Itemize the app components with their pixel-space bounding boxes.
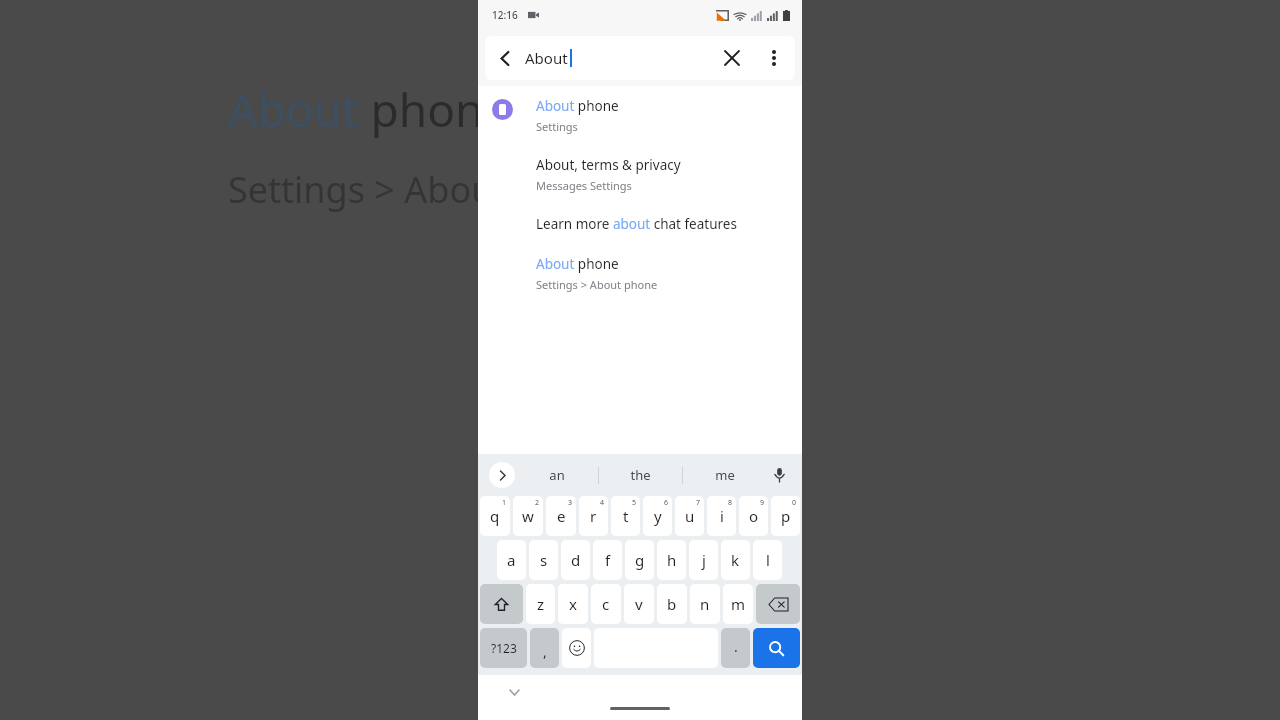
staticText: z (537, 594, 545, 614)
button[interactable]: w (513, 496, 543, 536)
button[interactable]: r (579, 496, 608, 536)
button[interactable]: n (690, 584, 720, 624)
button[interactable]: More options (753, 37, 795, 79)
button[interactable]: c (591, 584, 621, 624)
button[interactable]: m (723, 584, 753, 624)
staticText: Settings > About phone (228, 165, 625, 214)
button[interactable]: Voice input (766, 462, 792, 488)
button[interactable]: Back (485, 38, 525, 78)
button[interactable]: About (525, 48, 711, 68)
staticText: j (702, 550, 706, 570)
button[interactable]: d (561, 540, 590, 580)
staticText: About phone (536, 255, 619, 273)
button[interactable]: me (683, 454, 766, 496)
staticText: g (635, 550, 645, 570)
staticText: n (700, 594, 710, 614)
button[interactable]: About phone (478, 86, 802, 134)
staticText: 7 (696, 498, 701, 508)
button[interactable]: About, terms & privacy (478, 134, 802, 193)
button[interactable]: Backspace (756, 584, 800, 624)
staticText: f (605, 550, 611, 570)
button[interactable]: j (689, 540, 718, 580)
staticText: About phone (228, 78, 510, 141)
staticText: About phone (536, 97, 619, 115)
staticText: t (623, 506, 629, 526)
button[interactable]: Shift (480, 584, 523, 624)
staticText: k (731, 550, 740, 570)
staticText: 12:16 (492, 8, 518, 22)
button[interactable]: y (643, 496, 672, 536)
staticText: 0 (792, 498, 797, 508)
staticText: e (557, 506, 566, 526)
button[interactable]: More suggestions (489, 462, 515, 488)
button[interactable]: Emoji (562, 628, 591, 668)
staticText: i (720, 506, 724, 526)
button[interactable]: t (611, 496, 640, 536)
button[interactable]: l (753, 540, 782, 580)
staticText: h (667, 550, 677, 570)
staticText: s (540, 550, 548, 570)
button[interactable]: i (707, 496, 736, 536)
staticText: About, terms & privacy (536, 156, 681, 174)
staticText: c (602, 594, 610, 614)
button[interactable]: Search (753, 628, 800, 668)
staticText: , (543, 642, 547, 661)
button[interactable]: ?123 (480, 628, 527, 668)
button[interactable]: Clear (711, 37, 753, 79)
staticText: Learn more about chat features (536, 215, 737, 233)
staticText: p (781, 506, 791, 526)
button[interactable]: x (558, 584, 588, 624)
staticText: an (549, 466, 565, 484)
staticText: l (766, 550, 770, 570)
staticText: 8 (728, 498, 733, 508)
staticText: 3 (568, 498, 573, 508)
button[interactable]: Hide keyboard (504, 682, 524, 702)
button[interactable]: e (546, 496, 576, 536)
staticText: w (522, 506, 534, 526)
button[interactable]: an (515, 454, 598, 496)
button[interactable]: f (593, 540, 622, 580)
button[interactable]: o (739, 496, 768, 536)
staticText: me (715, 466, 735, 484)
staticText: 5 (632, 498, 637, 508)
button[interactable]: b (657, 584, 687, 624)
button[interactable]: u (675, 496, 704, 536)
staticText: y (654, 506, 662, 526)
button[interactable]: v (624, 584, 654, 624)
staticText: 9 (760, 498, 765, 508)
button[interactable]: h (657, 540, 686, 580)
button[interactable]: k (721, 540, 750, 580)
staticText: a (507, 550, 516, 570)
button[interactable]: Learn more about chat features (478, 193, 802, 233)
button[interactable]: q (480, 496, 510, 536)
staticText: Messages Settings (536, 178, 632, 193)
staticText: u (685, 506, 695, 526)
staticText: 6 (664, 498, 669, 508)
staticText: o (749, 506, 759, 526)
staticText: Settings > About phone (536, 277, 658, 292)
button[interactable]: the (599, 454, 682, 496)
staticText: v (635, 594, 643, 614)
button[interactable]: z (526, 584, 555, 624)
button[interactable]: , (530, 628, 559, 668)
button[interactable]: s (529, 540, 558, 580)
button[interactable]: g (625, 540, 654, 580)
staticText: Settings (536, 119, 578, 134)
staticText: m (731, 594, 746, 614)
button[interactable]: p (771, 496, 800, 536)
button[interactable]: a (497, 540, 526, 580)
staticText: 4 (600, 498, 605, 508)
staticText: 1 (502, 498, 507, 508)
staticText: x (569, 594, 577, 614)
button[interactable]: . (721, 628, 750, 668)
staticText: 2 (535, 498, 540, 508)
staticText: b (667, 594, 677, 614)
staticText: About (525, 48, 568, 68)
staticText: . (734, 637, 738, 656)
button[interactable]: About phone (478, 233, 802, 292)
staticText: r (590, 506, 597, 526)
staticText: ?123 (491, 640, 517, 656)
staticText: q (490, 506, 500, 526)
staticText: the (630, 466, 651, 484)
